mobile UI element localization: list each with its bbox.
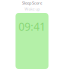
staticText: 09:41 <box>18 19 45 34</box>
staticText: Sleep Score <box>22 0 42 6</box>
staticText: Wake up <box>24 6 39 12</box>
